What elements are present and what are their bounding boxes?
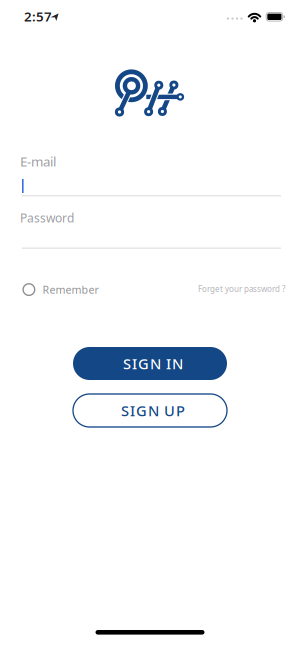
staticText: E-mail [20, 152, 56, 170]
button[interactable]: Remember [22, 282, 98, 297]
staticText: S I G N I N [123, 354, 183, 373]
staticText: S I G N U P [121, 401, 185, 420]
staticText: 2:57 [24, 7, 52, 25]
button[interactable]: S I G N U P [73, 394, 227, 427]
staticText: Remember [42, 282, 98, 297]
button[interactable]: S I G N I N [73, 347, 227, 380]
staticText: Password [20, 210, 74, 226]
staticText: Forget your password ? [198, 283, 285, 294]
button[interactable]: Forget your password ? [198, 283, 285, 294]
